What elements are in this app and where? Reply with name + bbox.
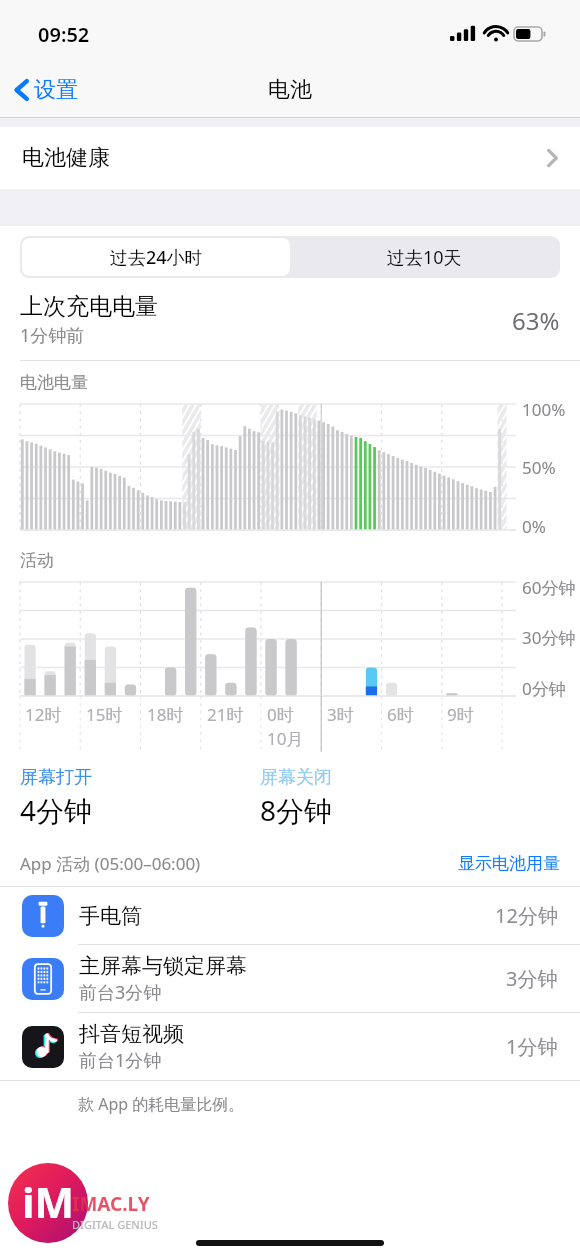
staticText: 电池健康 <box>22 144 110 172</box>
staticText: 60分钟 <box>522 576 576 599</box>
staticText: IMAC.LY <box>72 1191 150 1217</box>
staticText: 3时 <box>327 703 354 726</box>
staticText: DIGITAL GENIUS <box>72 1217 158 1232</box>
staticText: 手电筒 <box>79 903 142 929</box>
staticText: 63% <box>512 304 560 337</box>
staticText: 过去10天 <box>387 245 462 270</box>
staticText: 主屏幕与锁定屏幕 <box>79 953 247 979</box>
staticText: 3分钟 <box>506 965 558 992</box>
staticText: 前台3分钟 <box>79 980 162 1005</box>
staticText: 18时 <box>147 703 184 726</box>
button[interactable]: 手电筒 <box>0 887 580 944</box>
button[interactable]: 过去24小时 <box>22 238 290 276</box>
staticText: 0分钟 <box>522 677 566 700</box>
staticText: 0% <box>522 515 546 538</box>
staticText: 8分钟 <box>260 791 333 829</box>
staticText: 上次充电电量 <box>20 292 158 321</box>
staticText: 12分钟 <box>495 902 558 929</box>
button[interactable]: 过去10天 <box>290 238 558 276</box>
button[interactable]: 显示电池用量 <box>458 851 560 876</box>
button[interactable]: 设置 <box>0 70 88 110</box>
staticText: 电池 <box>268 76 312 104</box>
staticText: 电池电量 <box>20 372 88 393</box>
staticText: 屏幕关闭 <box>260 766 332 789</box>
staticText: App 活动 (05:00–06:00) <box>20 852 201 875</box>
staticText: 抖音短视频 <box>79 1021 184 1047</box>
staticText: 款 App 的耗电量比例。 <box>78 1093 245 1115</box>
staticText: 9时 <box>447 703 474 726</box>
staticText: 0时 <box>267 703 294 726</box>
staticText: 屏幕打开 <box>20 766 92 789</box>
staticText: 50% <box>522 456 556 479</box>
staticText: 21时 <box>207 703 244 726</box>
staticText: 30分钟 <box>522 626 576 649</box>
staticText: 1分钟前 <box>20 323 85 348</box>
staticText: 显示电池用量 <box>458 853 560 874</box>
button[interactable]: 抖音短视频 <box>0 1013 580 1080</box>
staticText: 设置 <box>34 76 78 104</box>
button[interactable]: 电池健康 <box>0 127 580 189</box>
staticText: 6时 <box>387 703 414 726</box>
staticText: 活动 <box>20 550 54 571</box>
staticText: iM <box>22 1173 75 1230</box>
staticText: 前台1分钟 <box>79 1048 162 1073</box>
staticText: 100% <box>522 398 566 421</box>
button[interactable]: 主屏幕与锁定屏幕 <box>0 945 580 1012</box>
staticText: 4分钟 <box>20 791 93 829</box>
staticText: 09:52 <box>38 21 90 48</box>
staticText: 12时 <box>25 703 62 726</box>
staticText: 15时 <box>86 703 123 726</box>
staticText: 过去24小时 <box>110 245 203 270</box>
staticText: 1分钟 <box>506 1033 558 1060</box>
staticText: 10月30日 <box>267 727 322 756</box>
